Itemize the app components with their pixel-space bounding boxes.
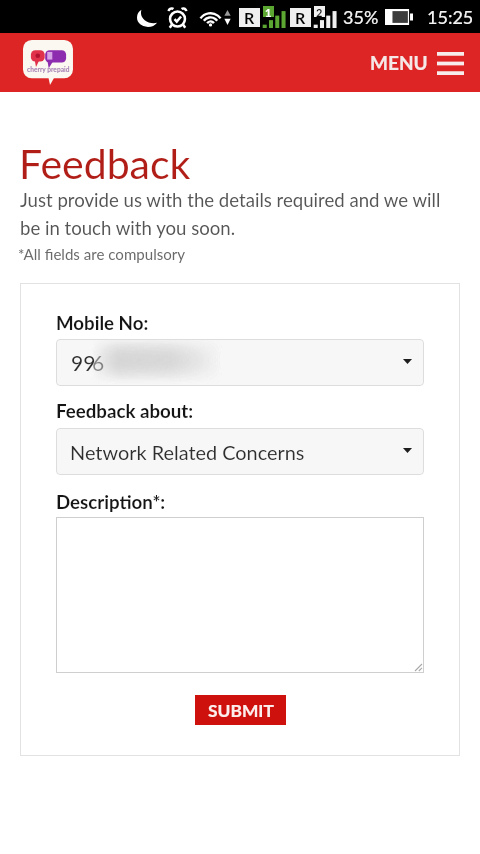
button[interactable]: 99 xyxy=(56,339,424,386)
staticText: MENU xyxy=(370,51,428,74)
staticText: Feedback about: xyxy=(56,400,194,422)
staticText: Network Related Concerns xyxy=(70,440,305,464)
staticText: cherry prepaid xyxy=(27,65,70,73)
staticText: R xyxy=(244,8,255,27)
staticText: 6 xyxy=(92,350,105,375)
staticText: R xyxy=(295,8,306,27)
staticText: Feedback xyxy=(19,139,191,188)
staticText: Just provide us with the details require… xyxy=(20,189,441,239)
button[interactable]: SUBMIT xyxy=(195,695,286,725)
staticText: 1 xyxy=(265,6,272,17)
staticText: *All fields are compulsory xyxy=(18,245,186,263)
staticText: Description*: xyxy=(56,491,166,513)
staticText: SUBMIT xyxy=(208,700,274,721)
button[interactable] xyxy=(56,517,424,673)
staticText: 35% xyxy=(343,6,379,28)
staticText: 99 xyxy=(71,350,96,375)
button[interactable]: cherry prepaid home xyxy=(23,40,74,85)
staticText: 2 xyxy=(316,6,323,17)
staticText: Mobile No: xyxy=(56,312,149,334)
button[interactable]: MENU xyxy=(370,51,464,74)
button[interactable]: Network Related Concerns xyxy=(56,428,424,475)
staticText: 15:25 xyxy=(427,6,474,28)
